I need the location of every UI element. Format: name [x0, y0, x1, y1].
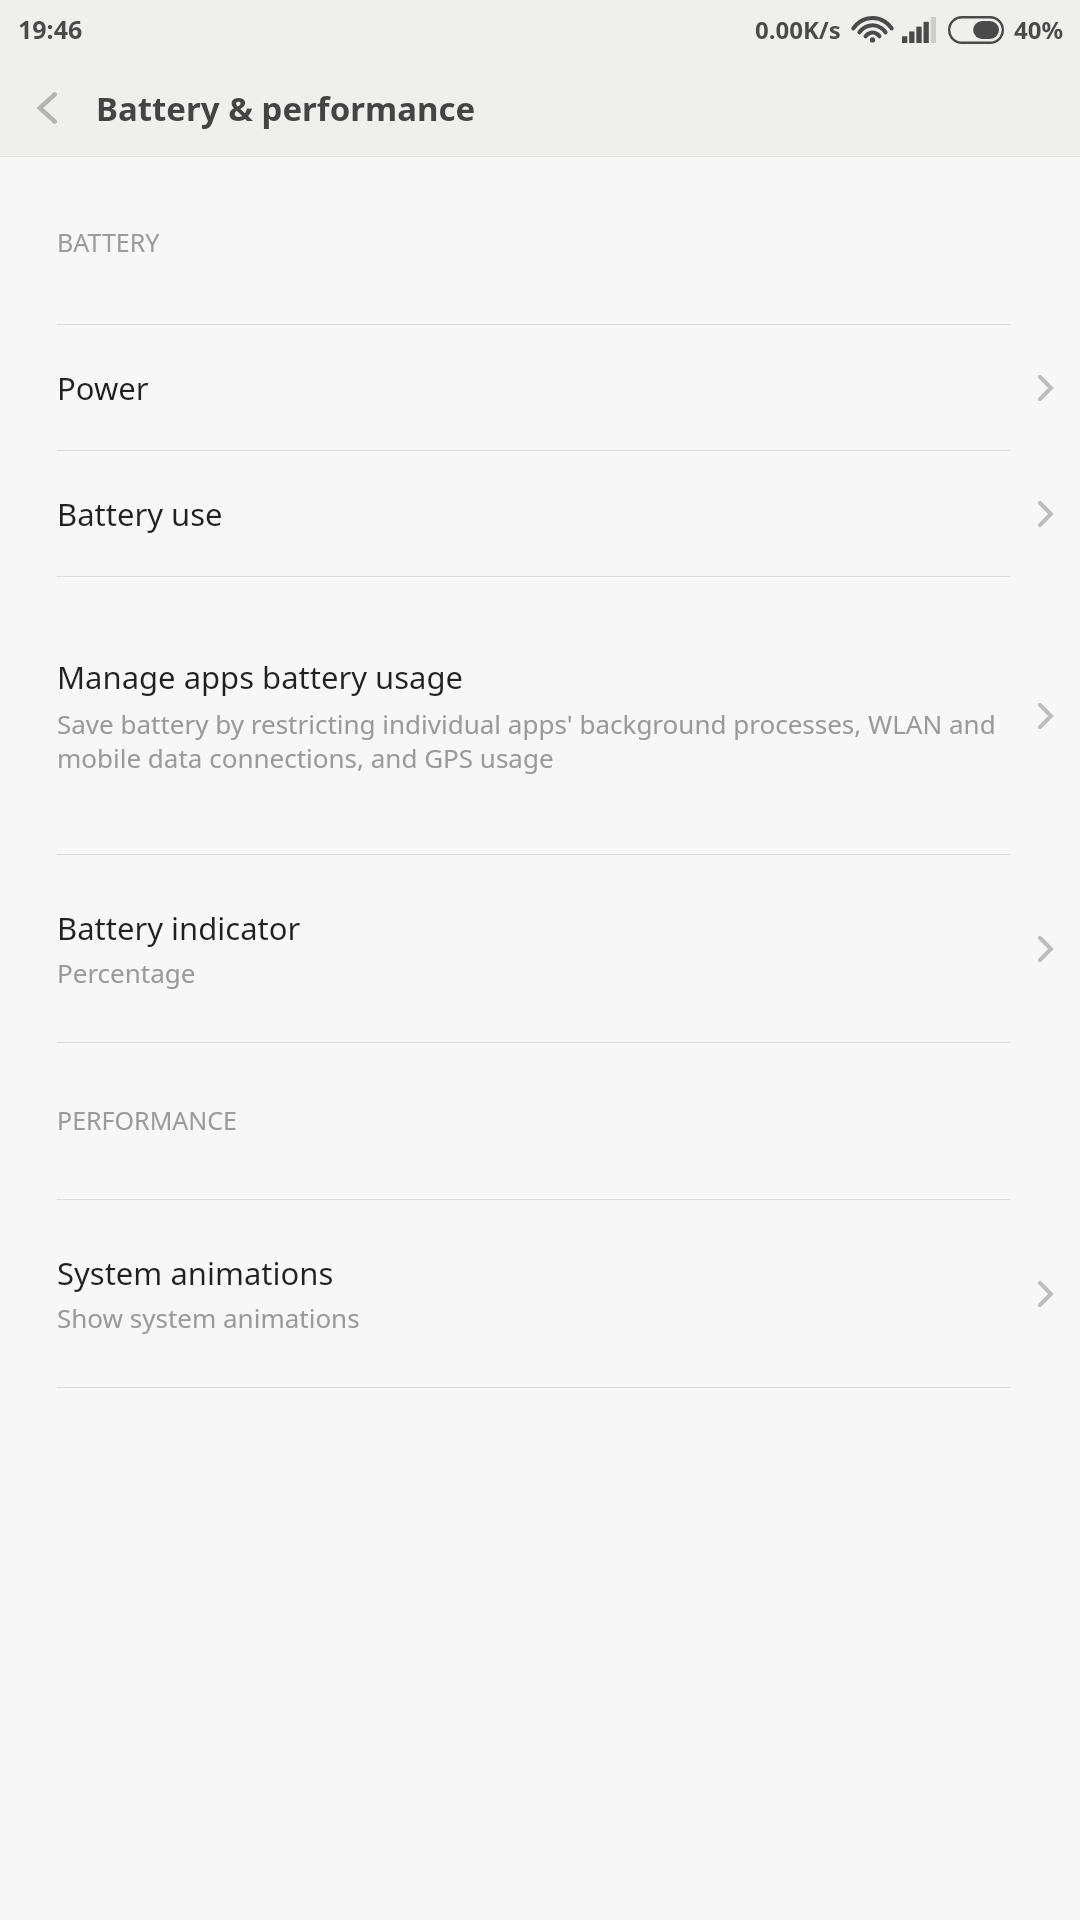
staticText: Battery use [57, 493, 223, 535]
staticText: BATTERY [57, 225, 160, 259]
staticText: Battery & performance [96, 86, 476, 131]
staticText: Percentage [57, 955, 196, 990]
button[interactable]: System animations [0, 1200, 1080, 1387]
staticText: Save battery by restricting individual a… [57, 706, 996, 776]
button[interactable]: Battery indicator [0, 855, 1080, 1042]
button[interactable]: Battery use [0, 451, 1080, 576]
button[interactable]: Manage apps battery usage [0, 577, 1080, 854]
staticText: Show system animations [57, 1300, 360, 1335]
button[interactable]: Back [0, 60, 96, 156]
staticText: Power [57, 367, 149, 409]
staticText: 0.00K/s [755, 13, 841, 46]
staticText: 19:46 [18, 12, 83, 46]
staticText: System animations [57, 1252, 334, 1294]
staticText: PERFORMANCE [57, 1103, 237, 1137]
staticText: Manage apps battery usage [57, 656, 464, 698]
staticText: Battery indicator [57, 907, 301, 949]
staticText: 40% [1014, 13, 1064, 46]
button[interactable]: Power [0, 325, 1080, 450]
